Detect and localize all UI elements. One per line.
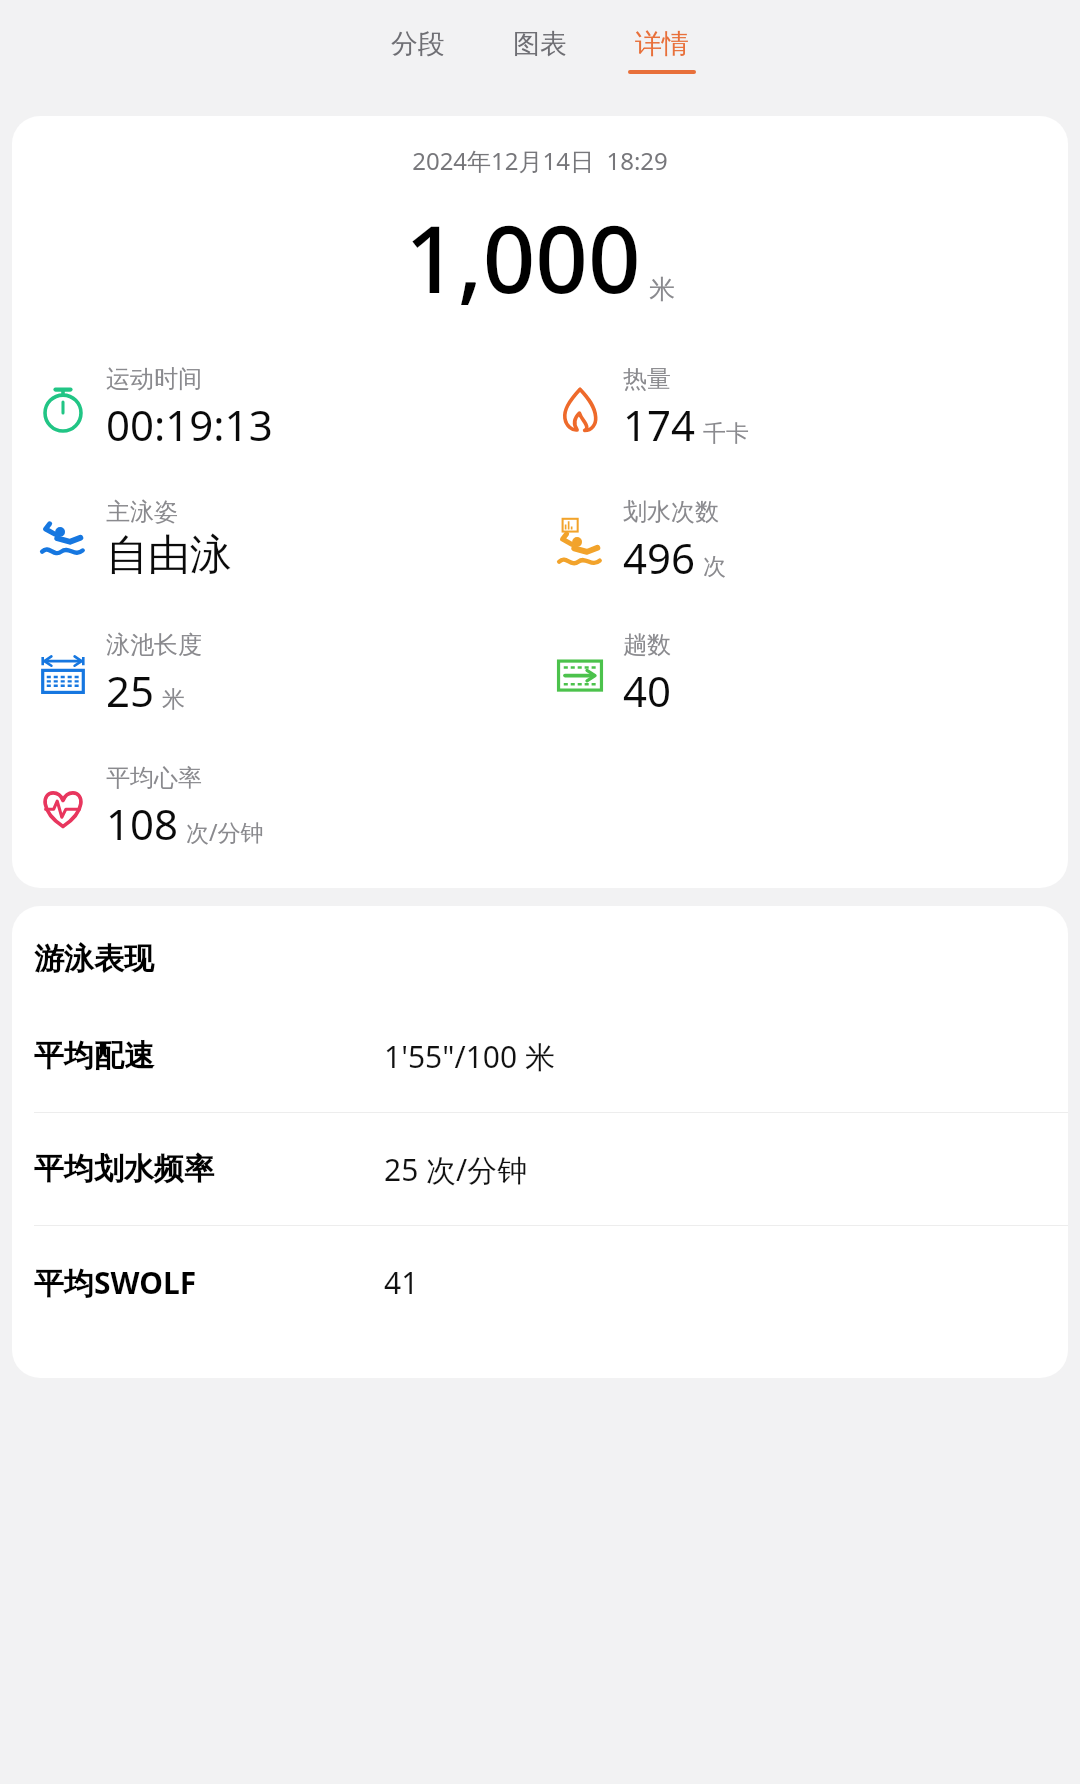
staticText: 1,000	[405, 195, 641, 320]
button[interactable]: Calories	[551, 362, 749, 455]
button[interactable]: 平均SWOLF	[12, 1226, 1068, 1338]
button[interactable]: Pool length	[34, 628, 202, 721]
button[interactable]: Heart rate	[34, 761, 264, 854]
button[interactable]: 图表	[496, 23, 584, 78]
staticText: 划水次数	[623, 497, 719, 527]
staticText: 千卡	[703, 419, 749, 448]
button[interactable]: Duration	[34, 362, 273, 455]
staticText: 米	[649, 273, 675, 306]
staticText: 米	[162, 685, 185, 714]
staticText: 1'55"/100 米	[384, 1036, 555, 1077]
button[interactable]: Stroke	[34, 495, 232, 584]
staticText: 25	[106, 662, 155, 719]
staticText: 平均SWOLF	[34, 1262, 384, 1303]
staticText: 00:19:13	[106, 396, 273, 453]
staticText: 泳池长度	[106, 630, 202, 660]
staticText: 平均心率	[106, 763, 202, 793]
staticText: 次	[703, 552, 726, 581]
staticText: 分段	[391, 27, 445, 61]
staticText: 41	[384, 1262, 419, 1303]
staticText: 主泳姿	[106, 497, 178, 527]
staticText: 运动时间	[106, 364, 202, 394]
button[interactable]: 分段	[374, 23, 462, 78]
button[interactable]: Strokes	[551, 495, 726, 588]
staticText: 496	[623, 529, 696, 586]
staticText: 详情	[635, 27, 689, 61]
button[interactable]: 平均划水频率	[12, 1113, 1068, 1225]
button[interactable]: 平均配速	[12, 1000, 1068, 1112]
staticText: 自由泳	[106, 529, 232, 582]
staticText: 趟数	[623, 630, 671, 660]
staticText: 次/分钟	[186, 816, 264, 847]
staticText: 热量	[623, 364, 671, 394]
staticText: 2024年12月14日 18:29	[12, 144, 1068, 177]
staticText: 25 次/分钟	[384, 1149, 528, 1190]
staticText: 108	[106, 795, 179, 852]
staticText: 174	[623, 396, 696, 453]
staticText: 平均划水频率	[34, 1150, 384, 1188]
button[interactable]: 详情	[618, 23, 706, 78]
staticText: 40	[623, 662, 672, 719]
staticText: 图表	[513, 27, 567, 61]
staticText: 游泳表现	[34, 940, 154, 978]
button[interactable]: Laps	[551, 628, 672, 721]
staticText: 平均配速	[34, 1037, 384, 1075]
